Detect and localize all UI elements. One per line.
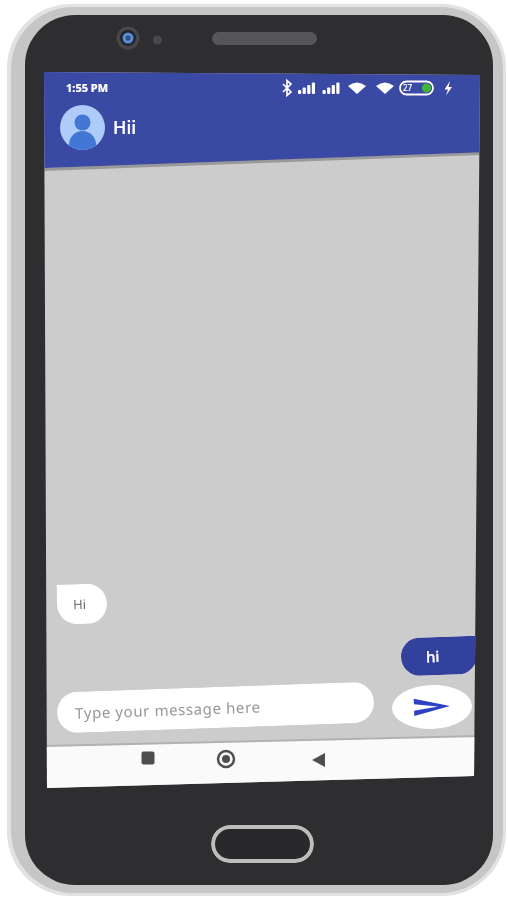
staticText: Hi <box>73 595 86 613</box>
button[interactable] <box>306 747 332 773</box>
staticText: Type your message here <box>75 696 261 723</box>
button[interactable]: hi <box>400 636 478 676</box>
staticText: Hii <box>113 115 137 140</box>
staticText: 27 <box>403 82 413 93</box>
button[interactable] <box>213 745 239 771</box>
button[interactable] <box>135 745 161 771</box>
button[interactable]: Hii <box>54 101 184 151</box>
staticText: 1:55 PM <box>66 80 109 95</box>
button[interactable] <box>391 684 473 730</box>
button[interactable] <box>211 825 314 863</box>
staticText: hi <box>426 646 440 666</box>
button[interactable]: Type your message here <box>56 681 375 733</box>
button[interactable]: Hi <box>56 583 107 625</box>
